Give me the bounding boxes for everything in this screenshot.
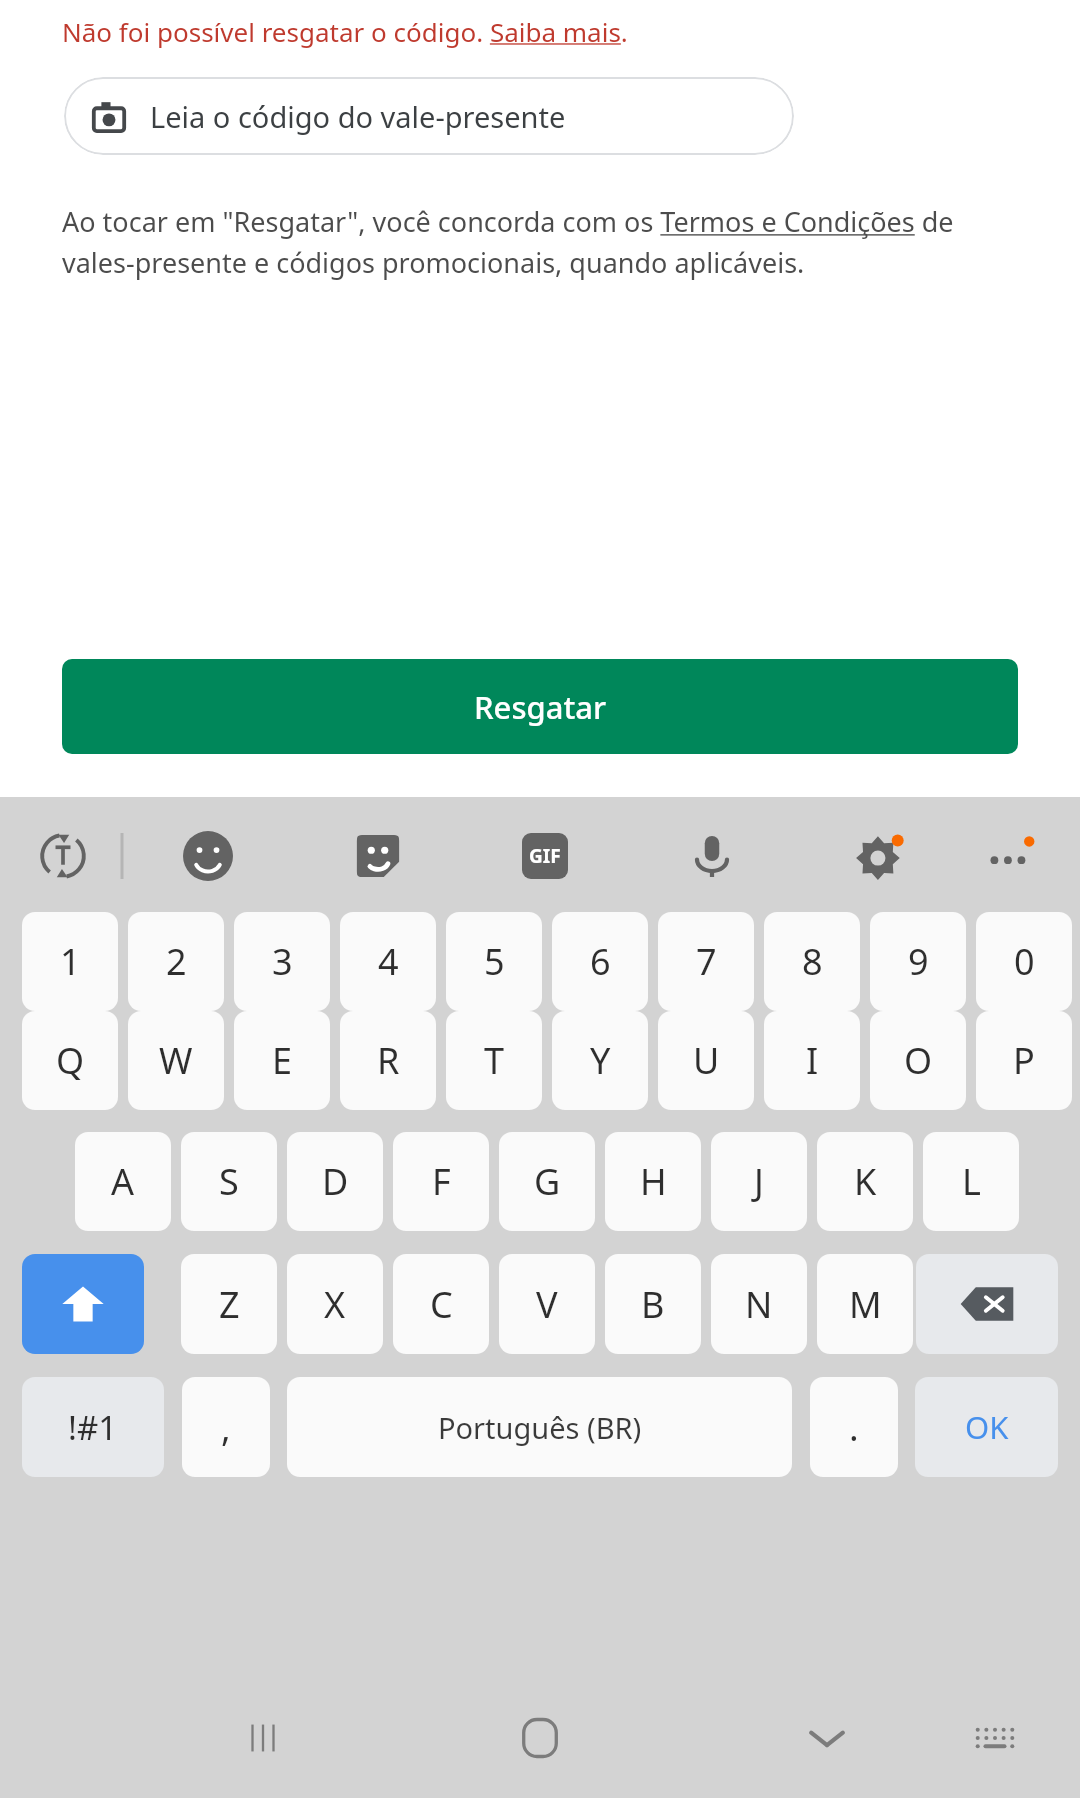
button[interactable]: O: [870, 1011, 966, 1110]
button[interactable]: W: [128, 1011, 224, 1110]
button[interactable]: Backspace: [916, 1254, 1058, 1354]
button[interactable]: Leia o código do vale-presente: [64, 77, 794, 155]
button[interactable]: Stickers: [338, 816, 418, 896]
button[interactable]: H: [605, 1132, 701, 1231]
staticText: V: [536, 1280, 558, 1329]
button[interactable]: 4: [340, 912, 436, 1011]
staticText: 2: [166, 937, 187, 986]
button[interactable]: Switch keyboard: [952, 1695, 1038, 1781]
staticText: Z: [219, 1280, 240, 1329]
button[interactable]: N: [711, 1254, 807, 1354]
other: Emoji: [183, 831, 233, 881]
staticText: 6: [590, 937, 611, 986]
button[interactable]: Resgatar: [62, 659, 1018, 754]
button[interactable]: 7: [658, 912, 754, 1011]
staticText: 4: [378, 937, 399, 986]
button[interactable]: P: [976, 1011, 1072, 1110]
button[interactable]: More options: [970, 816, 1050, 896]
button[interactable]: Translate: [23, 816, 103, 896]
staticText: G: [534, 1157, 561, 1206]
button[interactable]: J: [711, 1132, 807, 1231]
button[interactable]: Shift: [22, 1254, 144, 1354]
staticText: U: [693, 1036, 720, 1085]
button[interactable]: L: [923, 1132, 1019, 1231]
staticText: E: [272, 1036, 293, 1085]
other: Translate: [37, 830, 89, 882]
staticText: W: [159, 1036, 193, 1085]
staticText: Y: [590, 1036, 611, 1085]
button[interactable]: 0: [976, 912, 1072, 1011]
button[interactable]: 6: [552, 912, 648, 1011]
staticText: B: [641, 1280, 665, 1329]
staticText: M: [849, 1280, 882, 1329]
staticText: O: [904, 1036, 933, 1085]
button[interactable]: K: [817, 1132, 913, 1231]
staticText: 1: [60, 937, 81, 986]
other: GIF: [522, 833, 568, 879]
button[interactable]: R: [340, 1011, 436, 1110]
button[interactable]: G: [499, 1132, 595, 1231]
button[interactable]: M: [817, 1254, 913, 1354]
button[interactable]: OK: [915, 1377, 1058, 1477]
button[interactable]: U: [658, 1011, 754, 1110]
button[interactable]: 9: [870, 912, 966, 1011]
staticText: 9: [908, 937, 929, 986]
button[interactable]: Z: [181, 1254, 277, 1354]
button[interactable]: 1: [22, 912, 118, 1011]
button[interactable]: Y: [552, 1011, 648, 1110]
button[interactable]: E: [234, 1011, 330, 1110]
button[interactable]: Settings: [840, 816, 920, 896]
button[interactable]: Home: [497, 1695, 583, 1781]
button[interactable]: T: [446, 1011, 542, 1110]
button[interactable]: B: [605, 1254, 701, 1354]
button[interactable]: Recents: [220, 1695, 306, 1781]
button[interactable]: I: [764, 1011, 860, 1110]
button[interactable]: GIF: [505, 816, 585, 896]
staticText: Português (BR): [438, 1408, 642, 1447]
staticText: X: [324, 1280, 346, 1329]
staticText: 3: [272, 937, 293, 986]
staticText: H: [640, 1157, 667, 1206]
staticText: N: [745, 1280, 773, 1329]
button[interactable]: Q: [22, 1011, 118, 1110]
button[interactable]: X: [287, 1254, 383, 1354]
button[interactable]: Português (BR): [287, 1377, 792, 1477]
staticText: D: [322, 1157, 349, 1206]
button[interactable]: A: [75, 1132, 171, 1231]
staticText: 7: [696, 937, 717, 986]
staticText: Leia o código do vale-presente: [150, 97, 566, 136]
staticText: Não foi possível resgatar o código. Saib…: [62, 14, 628, 49]
button[interactable]: C: [393, 1254, 489, 1354]
button[interactable]: Hide keyboard: [784, 1695, 870, 1781]
button[interactable]: Emoji: [168, 816, 248, 896]
button[interactable]: F: [393, 1132, 489, 1231]
staticText: Resgatar: [474, 686, 607, 728]
button[interactable]: .: [810, 1377, 898, 1477]
staticText: 0: [1014, 937, 1035, 986]
staticText: OK: [965, 1406, 1009, 1448]
staticText: S: [219, 1157, 239, 1206]
button[interactable]: 8: [764, 912, 860, 1011]
button[interactable]: Voice input: [672, 816, 752, 896]
button[interactable]: S: [181, 1132, 277, 1231]
staticText: Q: [56, 1036, 85, 1085]
staticText: T: [484, 1036, 505, 1085]
staticText: !#1: [68, 1405, 118, 1450]
other: Stickers: [354, 832, 402, 880]
button[interactable]: !#1: [22, 1377, 164, 1477]
other: Settings: [854, 830, 906, 882]
button[interactable]: 2: [128, 912, 224, 1011]
staticText: I: [806, 1036, 819, 1085]
button[interactable]: ,: [182, 1377, 270, 1477]
staticText: .: [849, 1403, 859, 1452]
button[interactable]: D: [287, 1132, 383, 1231]
staticText: F: [432, 1157, 451, 1206]
staticText: L: [962, 1157, 981, 1206]
other: More options: [984, 830, 1036, 882]
button[interactable]: 5: [446, 912, 542, 1011]
staticText: ,: [221, 1403, 231, 1452]
button[interactable]: 3: [234, 912, 330, 1011]
staticText: Ao tocar em "Resgatar", você concorda co…: [62, 203, 1022, 281]
button[interactable]: V: [499, 1254, 595, 1354]
staticText: K: [854, 1157, 877, 1206]
